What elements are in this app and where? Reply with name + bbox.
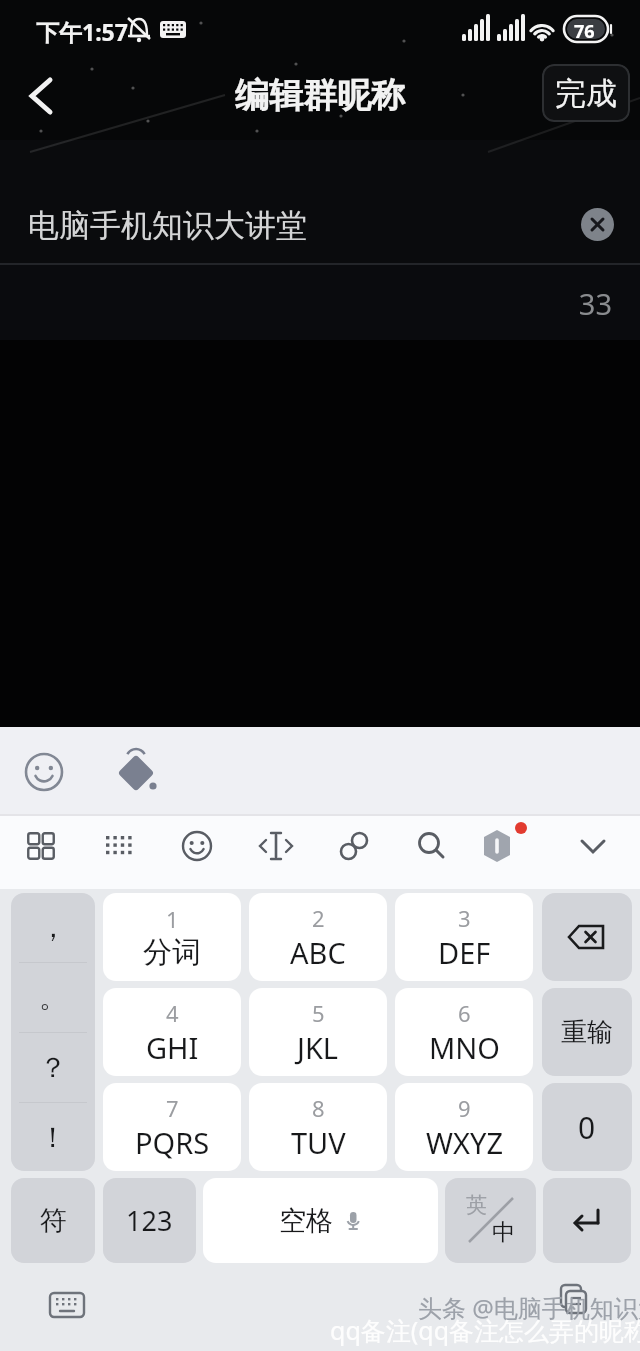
staticText: 9 — [458, 1093, 471, 1123]
button[interactable]: 9 — [395, 1083, 533, 1171]
button[interactable] — [39, 1277, 95, 1333]
staticText: 1 — [166, 904, 179, 934]
button[interactable]: 5 — [249, 988, 387, 1076]
staticText: 分词 — [143, 934, 201, 971]
button[interactable] — [545, 1270, 601, 1326]
button[interactable] — [16, 745, 72, 801]
staticText: ！ — [39, 1120, 67, 1155]
staticText: 。 — [39, 980, 67, 1015]
button[interactable]: 符 — [11, 1178, 95, 1263]
staticText: qq备注(qq备注怎么弄的昵称 — [330, 1313, 640, 1347]
button[interactable] — [16, 70, 68, 122]
staticText: 2 — [312, 903, 325, 933]
button[interactable]: 重输 — [542, 988, 632, 1076]
staticText: 符 — [40, 1204, 67, 1238]
staticText: 编辑群昵称 — [0, 74, 640, 117]
button[interactable]: 。 — [11, 963, 95, 1032]
staticText: TUV — [291, 1123, 346, 1162]
button[interactable]: 123 — [103, 1178, 196, 1263]
button[interactable] — [543, 1178, 631, 1263]
button[interactable]: 0 — [542, 1083, 632, 1171]
button[interactable]: 4 — [103, 988, 241, 1076]
staticText: 英 — [466, 1192, 487, 1218]
staticText: ， — [39, 910, 67, 945]
button[interactable] — [0, 140, 640, 263]
button[interactable]: ， — [11, 893, 95, 962]
button[interactable]: 空格 — [203, 1178, 438, 1263]
button[interactable] — [469, 818, 525, 874]
staticText: 重输 — [561, 1016, 613, 1049]
staticText: 76 — [574, 19, 595, 44]
staticText: 3 — [458, 903, 471, 933]
staticText: 空格 — [279, 1204, 333, 1238]
staticText: MNO — [429, 1028, 500, 1067]
button[interactable] — [108, 746, 164, 802]
button[interactable] — [91, 818, 147, 874]
staticText: ABC — [290, 933, 346, 972]
button[interactable]: ！ — [11, 1103, 95, 1171]
staticText: 完成 — [555, 74, 617, 113]
staticText: 33 — [0, 284, 612, 323]
button[interactable]: 英 — [445, 1178, 536, 1263]
staticText: 8 — [312, 1093, 325, 1123]
button[interactable]: 1 — [103, 893, 241, 981]
button[interactable]: 8 — [249, 1083, 387, 1171]
button[interactable] — [326, 818, 382, 874]
button[interactable]: 2 — [249, 893, 387, 981]
staticText: 4 — [166, 998, 179, 1028]
button[interactable]: 3 — [395, 893, 533, 981]
button[interactable]: ？ — [11, 1033, 95, 1102]
staticText: 123 — [126, 1202, 173, 1239]
staticText: PQRS — [135, 1123, 210, 1162]
staticText: 6 — [458, 998, 471, 1028]
staticText: 头条 @电脑手机知识大讲堂 — [418, 1291, 640, 1324]
button[interactable]: 7 — [103, 1083, 241, 1171]
staticText: DEF — [438, 933, 491, 972]
button[interactable] — [581, 208, 614, 241]
staticText: 电脑手机知识大讲堂 — [28, 206, 307, 245]
button[interactable] — [565, 818, 621, 874]
staticText: JKL — [297, 1028, 339, 1067]
button[interactable] — [542, 893, 632, 981]
button[interactable] — [404, 818, 460, 874]
button[interactable] — [13, 818, 69, 874]
staticText: GHI — [146, 1028, 199, 1067]
staticText: WXYZ — [426, 1123, 503, 1162]
staticText: ？ — [39, 1050, 67, 1085]
staticText: 中 — [492, 1218, 515, 1247]
button[interactable]: 6 — [395, 988, 533, 1076]
staticText: 7 — [166, 1093, 179, 1123]
staticText: 下午1:57 — [36, 16, 128, 47]
staticText: 0 — [578, 1107, 596, 1148]
button[interactable]: 完成 — [542, 64, 630, 122]
staticText: 5 — [312, 998, 325, 1028]
button[interactable] — [248, 818, 304, 874]
button[interactable] — [169, 818, 225, 874]
